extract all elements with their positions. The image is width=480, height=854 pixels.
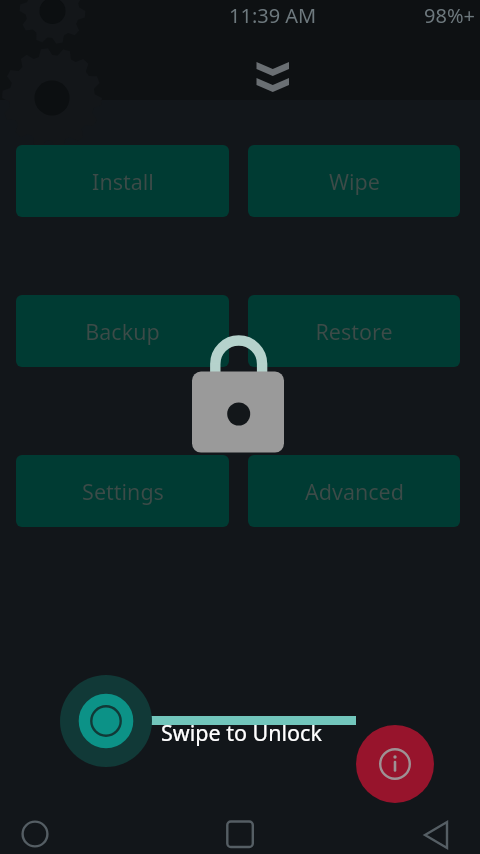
button[interactable]: Wipe bbox=[248, 145, 460, 217]
staticText: 11:39 AM bbox=[229, 2, 317, 29]
button[interactable]: Backup bbox=[16, 295, 229, 367]
staticText: 98%+ bbox=[424, 2, 475, 29]
button[interactable]: Info bbox=[356, 725, 434, 803]
button[interactable]: Restore bbox=[248, 295, 460, 367]
button[interactable]: Home bbox=[0, 811, 70, 854]
staticText: Settings bbox=[82, 477, 164, 506]
button[interactable]: Recents bbox=[205, 811, 275, 854]
staticText: Backup bbox=[85, 317, 160, 346]
button[interactable]: Install bbox=[16, 145, 229, 217]
button[interactable]: Settings bbox=[16, 455, 229, 527]
button[interactable]: Swipe to Unlock bbox=[59, 674, 153, 768]
staticText: Wipe bbox=[329, 167, 380, 196]
button[interactable]: Show menu bbox=[248, 54, 298, 100]
button[interactable]: Advanced bbox=[248, 455, 460, 527]
staticText: Install bbox=[92, 167, 154, 196]
button[interactable]: Back bbox=[400, 811, 470, 854]
staticText: Restore bbox=[315, 317, 393, 346]
staticText: Advanced bbox=[305, 477, 404, 506]
staticText: Swipe to Unlock bbox=[161, 718, 322, 747]
